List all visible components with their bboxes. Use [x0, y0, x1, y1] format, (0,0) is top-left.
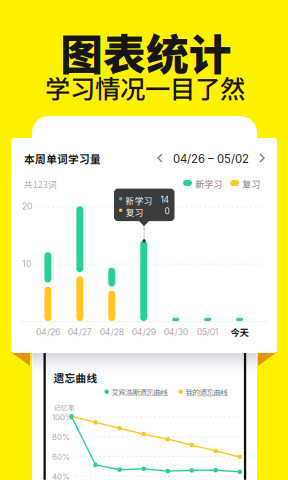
staticText: 10	[22, 259, 31, 269]
staticText: 04/30	[164, 327, 188, 337]
staticText: 复习	[125, 205, 143, 218]
staticText: 共123词	[24, 178, 57, 190]
staticText: 遗忘曲线	[53, 370, 97, 385]
button[interactable]: 上一周	[155, 152, 165, 164]
staticText: 新学习	[125, 194, 152, 207]
staticText: 我的遗忘曲线	[185, 386, 227, 397]
staticText: 05/01	[197, 327, 219, 337]
staticText: 复习	[242, 177, 260, 190]
button[interactable]: 下一周	[257, 152, 267, 164]
staticText: 艾宾浩斯遗忘曲线	[111, 386, 167, 397]
staticText: 14	[160, 195, 168, 205]
staticText: 100%	[52, 412, 73, 422]
staticText: 20	[22, 201, 32, 212]
staticText: 04/26 – 05/02	[173, 152, 249, 166]
staticText: 40%	[52, 472, 70, 480]
staticText: 新学习	[195, 177, 222, 190]
staticText: 04/28	[100, 327, 124, 337]
staticText: 0	[164, 206, 169, 216]
staticText: 学习情况一目了然	[45, 69, 245, 106]
staticText: 60%	[52, 452, 70, 462]
staticText: 图表统计	[60, 21, 232, 83]
staticText: 80%	[52, 432, 70, 442]
staticText: 04/27	[68, 327, 92, 337]
staticText: 04/26	[36, 327, 60, 337]
staticText: 本周单词学习量	[24, 151, 101, 166]
staticText: 记忆率	[53, 402, 74, 412]
staticText: 今天	[231, 325, 249, 339]
staticText: 04/29	[132, 327, 156, 337]
